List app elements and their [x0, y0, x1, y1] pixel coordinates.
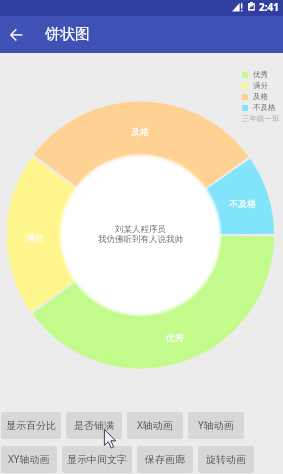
button[interactable]: XY轴动画: [1, 446, 57, 472]
staticText: 显示百分比: [6, 419, 56, 432]
staticText: 2:41: [259, 0, 279, 14]
staticText: XY轴动画: [8, 452, 50, 466]
staticText: 三年级一班: [242, 114, 280, 123]
staticText: 满分: [253, 81, 268, 90]
staticText: X轴动画: [137, 418, 173, 432]
staticText: Y轴动画: [198, 418, 234, 432]
button[interactable]: 保存画廊: [137, 446, 193, 472]
staticText: 刘某人程序员 我仿佛听到有人说我帅: [98, 224, 183, 245]
button[interactable]: 显示百分比: [1, 412, 61, 438]
staticText: 满分: [26, 232, 44, 243]
button[interactable]: Back: [0, 16, 32, 53]
staticText: 饼状图: [45, 25, 90, 44]
staticText: 旋转动画: [206, 453, 246, 466]
button[interactable]: 旋转动画: [198, 446, 254, 472]
staticText: 不及格: [253, 103, 276, 112]
staticText: 及格: [131, 126, 149, 137]
staticText: 保存画廊: [145, 453, 185, 466]
staticText: 显示中间文字: [67, 453, 127, 466]
staticText: 及格: [253, 92, 268, 101]
button[interactable]: 是否铺满: [66, 412, 122, 438]
staticText: 优秀: [166, 332, 184, 343]
button[interactable]: X轴动画: [127, 412, 183, 438]
staticText: 是否铺满: [74, 419, 114, 432]
button[interactable]: 显示中间文字: [62, 446, 132, 472]
staticText: 不及格: [229, 198, 256, 209]
button[interactable]: Y轴动画: [188, 412, 244, 438]
staticText: 优秀: [253, 70, 268, 79]
